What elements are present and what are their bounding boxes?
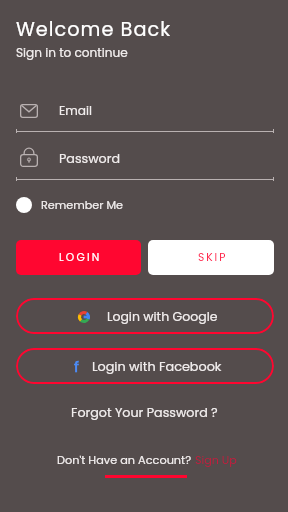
staticText: Login with Google <box>107 308 218 325</box>
button[interactable]: Login with Google <box>16 298 274 334</box>
staticText: Welcome Back <box>16 16 172 43</box>
staticText: Remember Me <box>41 197 123 213</box>
other: Password <box>20 147 38 167</box>
staticText: Email <box>59 102 93 119</box>
button[interactable]: SKIP <box>148 240 274 275</box>
staticText: SKIP <box>198 250 228 265</box>
staticText: Don't Have an Account? <box>57 452 195 468</box>
button[interactable]: Remember Me <box>16 197 123 213</box>
button[interactable]: f <box>16 348 274 384</box>
other: Email <box>20 104 38 118</box>
button[interactable]: LOGIN <box>16 240 141 275</box>
staticText: Sign in to continue <box>16 44 128 61</box>
staticText: Password <box>59 150 121 168</box>
staticText: LOGIN <box>59 250 102 265</box>
staticText: f <box>74 356 79 377</box>
staticText: Login with Facebook <box>92 358 222 376</box>
button[interactable]: Sign Up <box>195 452 237 468</box>
button[interactable]: Forgot Your Password ? <box>71 404 218 422</box>
